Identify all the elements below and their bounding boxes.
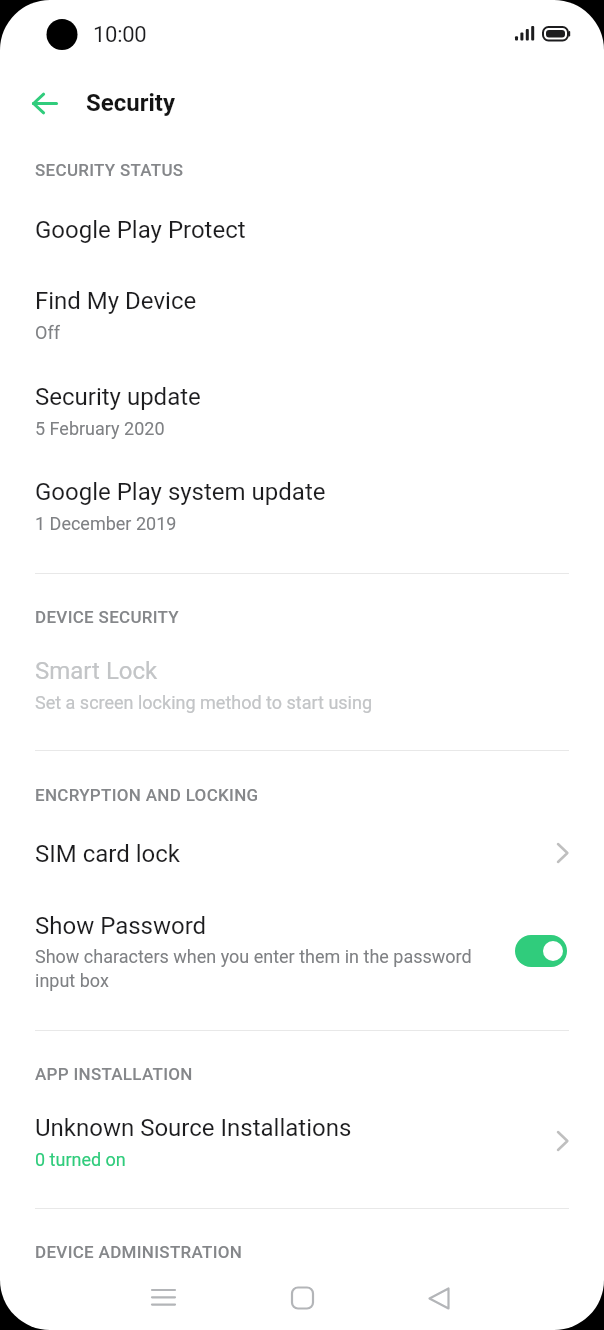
staticText: SIM card lock	[35, 840, 180, 868]
button[interactable]	[0, 270, 604, 360]
button[interactable]	[388, 1272, 488, 1322]
staticText: Smart Lock	[35, 657, 158, 685]
staticText: 0 turned on	[35, 1149, 126, 1170]
staticText: SECURITY STATUS	[35, 160, 184, 180]
button[interactable]	[0, 195, 604, 265]
staticText: Off	[35, 322, 60, 343]
staticText: 10:00	[93, 22, 147, 48]
button[interactable]	[20, 78, 70, 128]
staticText: Find My Device	[35, 287, 197, 315]
staticText: Google Play system update	[35, 478, 326, 506]
button[interactable]	[252, 1272, 352, 1322]
staticText: ENCRYPTION AND LOCKING	[35, 785, 259, 805]
button[interactable]	[0, 460, 604, 550]
button[interactable]	[0, 1095, 604, 1187]
button[interactable]	[0, 820, 604, 888]
button[interactable]	[0, 898, 604, 1006]
staticText: Show characters when you enter them in t…	[35, 946, 505, 991]
staticText: Security	[86, 89, 175, 117]
button[interactable]	[515, 935, 567, 967]
staticText: APP INSTALLATION	[35, 1064, 193, 1084]
button[interactable]	[0, 640, 604, 730]
staticText: 1 December 2019	[35, 513, 177, 534]
staticText: Show Password	[35, 912, 207, 940]
button[interactable]	[0, 365, 604, 455]
staticText: Security update	[35, 383, 201, 411]
staticText: Set a screen locking method to start usi…	[35, 692, 373, 713]
staticText: DEVICE SECURITY	[35, 607, 180, 627]
staticText: Google Play Protect	[35, 216, 246, 244]
staticText: DEVICE ADMINISTRATION	[35, 1242, 243, 1262]
button[interactable]	[114, 1272, 214, 1322]
staticText: 5 February 2020	[35, 418, 165, 439]
staticText: Unknown Source Installations	[35, 1114, 352, 1142]
